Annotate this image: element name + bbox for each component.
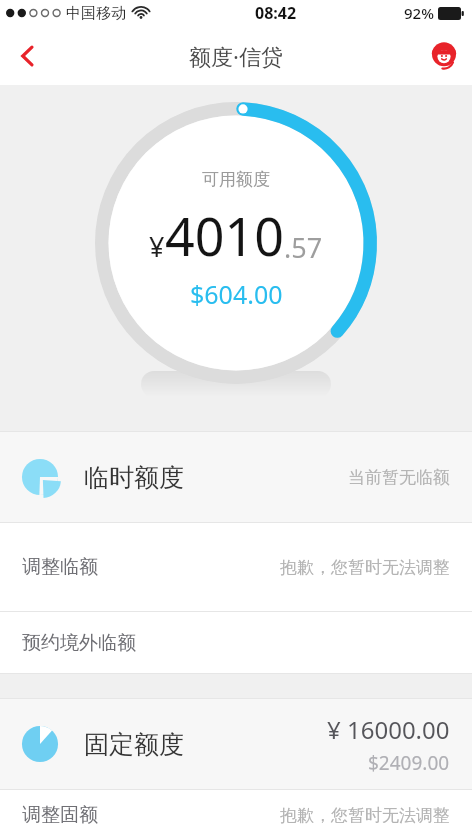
button[interactable]: 预约境外临额: [0, 612, 472, 673]
staticText: 额度·信贷: [189, 41, 283, 71]
staticText: 预约境外临额: [22, 631, 136, 655]
staticText: .57: [284, 229, 323, 266]
button[interactable]: Back: [0, 28, 56, 84]
staticText: $2409.00: [368, 750, 450, 776]
staticText: $604.00: [190, 277, 283, 311]
button[interactable]: 临时额度: [0, 432, 472, 522]
staticText: 中国移动: [66, 4, 126, 23]
staticText: 调整临额: [22, 555, 98, 579]
button[interactable]: 固定额度: [0, 699, 472, 789]
staticText: 固定额度: [84, 729, 184, 760]
staticText: 4010: [165, 200, 284, 271]
staticText: 临时额度: [84, 462, 184, 493]
staticText: 抱歉，您暂时无法调整: [280, 557, 450, 578]
button[interactable]: 调整固额: [0, 790, 472, 840]
staticText: ¥: [149, 228, 165, 265]
staticText: 可用额度: [202, 169, 270, 190]
staticText: ¥ 16000.00: [327, 713, 450, 746]
staticText: 调整固额: [22, 803, 98, 827]
staticText: 抱歉，您暂时无法调整: [280, 805, 450, 826]
staticText: 92%: [404, 3, 434, 23]
button[interactable]: 调整临额: [0, 523, 472, 611]
button[interactable]: Customer service: [424, 36, 464, 76]
staticText: 08:42: [255, 2, 297, 24]
staticText: 当前暂无临额: [348, 467, 450, 488]
